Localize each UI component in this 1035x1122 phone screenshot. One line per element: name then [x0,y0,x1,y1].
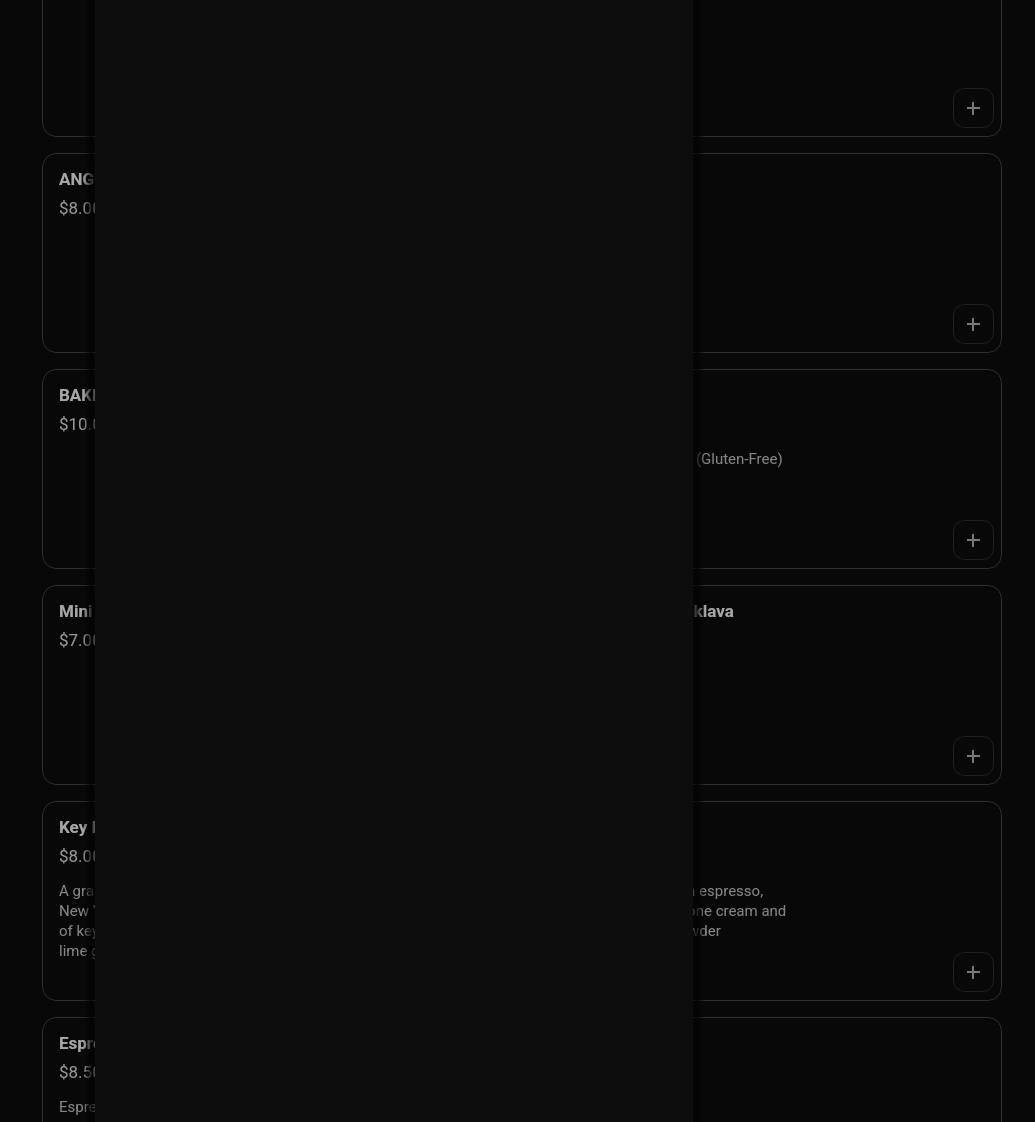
button[interactable]: ANGEL FOOD CAKE [42,153,516,353]
staticText: Pistachio Honey Baklava [545,601,734,621]
staticText: $8.00 [59,198,102,218]
staticText: Mini Baklava [59,601,157,621]
button[interactable]: Chocolate Mousse [528,1017,1002,1122]
button[interactable]: CARROT CAKE [528,0,1002,137]
staticText: Espresso Creme Brulee [59,1033,238,1053]
button[interactable]: Add Pistachio Honey Baklava [953,736,994,776]
staticText: Key Lime Pie [59,817,158,837]
staticText: BAKLAVA [59,385,135,405]
staticText: $7.00 [59,630,102,650]
staticText: $8.00 [59,846,102,866]
staticText: Espresso infused custard [59,1098,228,1116]
staticText: $8.50 [59,1062,102,1082]
staticText: ANGEL FOOD CAKE [59,169,208,189]
button[interactable]: Add Tiramisu [953,952,994,992]
button[interactable]: Mini Baklava [42,585,516,785]
staticText: $10.00 [59,414,112,434]
button[interactable]: Add CARROT CAKE [953,88,994,128]
staticText: Ladyfingers steeped in espresso, layered… [545,882,787,939]
staticText: A graham cracker crust topped with New Y… [59,882,317,959]
button[interactable]: CREME BRULEE [528,369,1002,569]
button[interactable]: Key Lime Pie [42,801,516,1001]
staticText: Classic Italian custard (Gluten-Free) [545,450,783,468]
button[interactable]: Add CARAMEL CAKE [953,304,994,344]
button[interactable]: Add CREME BRULEE [953,520,994,560]
button[interactable]: CARAMEL CAKE [528,153,1002,353]
button[interactable]: Espresso Creme Brulee [42,1017,516,1122]
button[interactable]: Pistachio Honey Baklava [528,585,1002,785]
button[interactable]: BAKLAVA [42,369,516,569]
button[interactable]: Tiramisu [528,801,1002,1001]
